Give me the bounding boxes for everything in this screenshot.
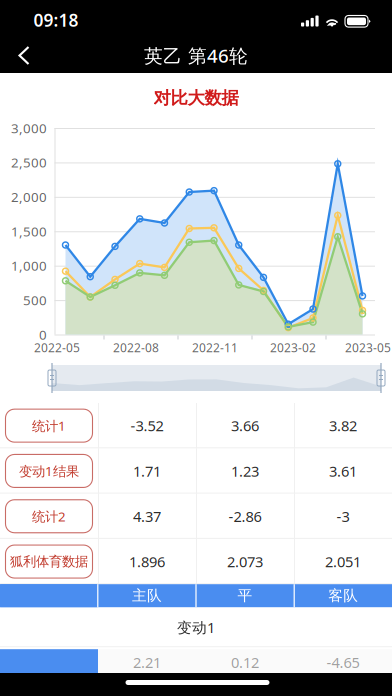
staticText: 狐利体育数据 [10,553,88,570]
staticText: 主队 [132,587,162,605]
staticText: 统计1 [32,417,66,434]
staticText: 平 [238,587,253,605]
staticText: 3,000 [11,119,47,137]
staticText: 1,000 [11,257,47,274]
button[interactable]: 变动1结果 [0,448,98,494]
staticText: 2,500 [11,154,47,171]
staticText: 3.61 [329,461,357,481]
staticText: 统计2 [32,507,66,525]
button[interactable]: 狐利体育数据 [0,539,98,584]
staticText: -4.65 [326,652,359,672]
staticText: 英乙 第46轮 [144,43,248,68]
staticText: 2022-11 [192,339,238,355]
staticText: 0 [39,326,47,343]
staticText: -3.52 [130,416,163,435]
staticText: 1.71 [133,461,161,481]
staticText: 500 [23,291,47,309]
staticText: 2022-08 [113,339,159,355]
staticText: 1,500 [11,222,47,240]
staticText: -2.86 [228,506,261,526]
staticText: 客队 [328,587,358,605]
staticText: 3.82 [329,416,357,435]
staticText: 2.21 [133,652,161,672]
staticText: 2022-05 [34,339,80,355]
button[interactable]: Back [0,38,48,73]
staticText: 1.23 [231,461,259,481]
staticText: -3 [336,506,349,526]
staticText: 4.37 [133,506,161,526]
staticText: 1.896 [129,552,165,571]
staticText: 3.66 [231,416,259,435]
staticText: 0.12 [231,652,259,672]
staticText: 2023-02 [270,339,316,355]
staticText: 变动1结果 [19,462,79,480]
staticText: 变动1 [177,617,215,637]
staticText: 09:18 [33,8,78,31]
staticText: 2,000 [11,188,47,206]
staticText: 2.051 [325,552,361,571]
button[interactable]: 统计2 [0,494,98,539]
button[interactable]: 统计1 [0,403,98,448]
staticText: 2023-05 [345,339,391,355]
staticText: 对比大数据 [153,87,238,109]
staticText: 2.073 [227,552,263,571]
